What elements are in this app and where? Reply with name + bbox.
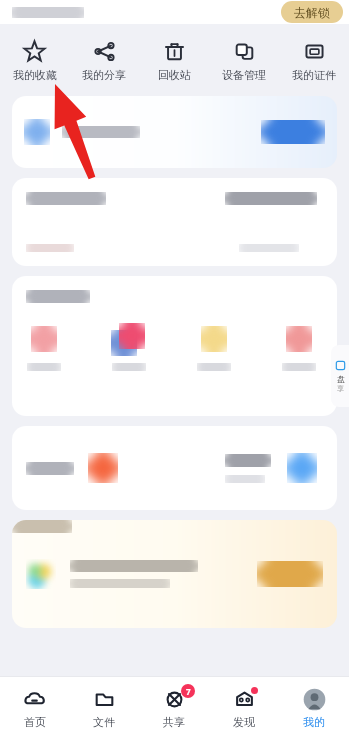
staticText: 首页 [24, 715, 46, 729]
button[interactable]: 我的 [279, 677, 349, 739]
staticText: 我的证件 [292, 68, 336, 82]
button[interactable]: 设备管理 [209, 38, 279, 84]
staticText: 我的分享 [82, 68, 126, 82]
staticText: 发现 [233, 715, 255, 729]
button[interactable]: 7 [139, 677, 209, 739]
button[interactable]: 我的收藏 [0, 38, 69, 84]
button[interactable] [12, 426, 337, 510]
button[interactable]: 去解锁 [281, 1, 343, 23]
staticText: 我的收藏 [13, 68, 57, 82]
button[interactable]: 网盘分享面板 [331, 345, 349, 407]
button[interactable] [12, 276, 337, 416]
staticText: 盘 [337, 374, 345, 384]
button[interactable]: 我的分享 [69, 38, 139, 84]
staticText: 去解锁 [294, 5, 330, 20]
button[interactable]: 发现 [209, 677, 279, 739]
button[interactable]: 首页 [0, 677, 69, 739]
staticText: 7 [186, 686, 191, 697]
staticText: 文件 [93, 715, 115, 729]
button[interactable] [12, 96, 337, 168]
staticText: 回收站 [158, 68, 191, 82]
button[interactable] [12, 520, 337, 628]
button[interactable]: 回收站 [139, 38, 209, 84]
staticText: 共享 [163, 715, 185, 729]
button[interactable] [12, 178, 337, 266]
staticText: 我的 [303, 715, 325, 729]
staticText: 享 [337, 384, 344, 393]
staticText: 设备管理 [222, 68, 266, 82]
button[interactable]: 文件 [69, 677, 139, 739]
button[interactable]: 我的证件 [279, 38, 349, 84]
